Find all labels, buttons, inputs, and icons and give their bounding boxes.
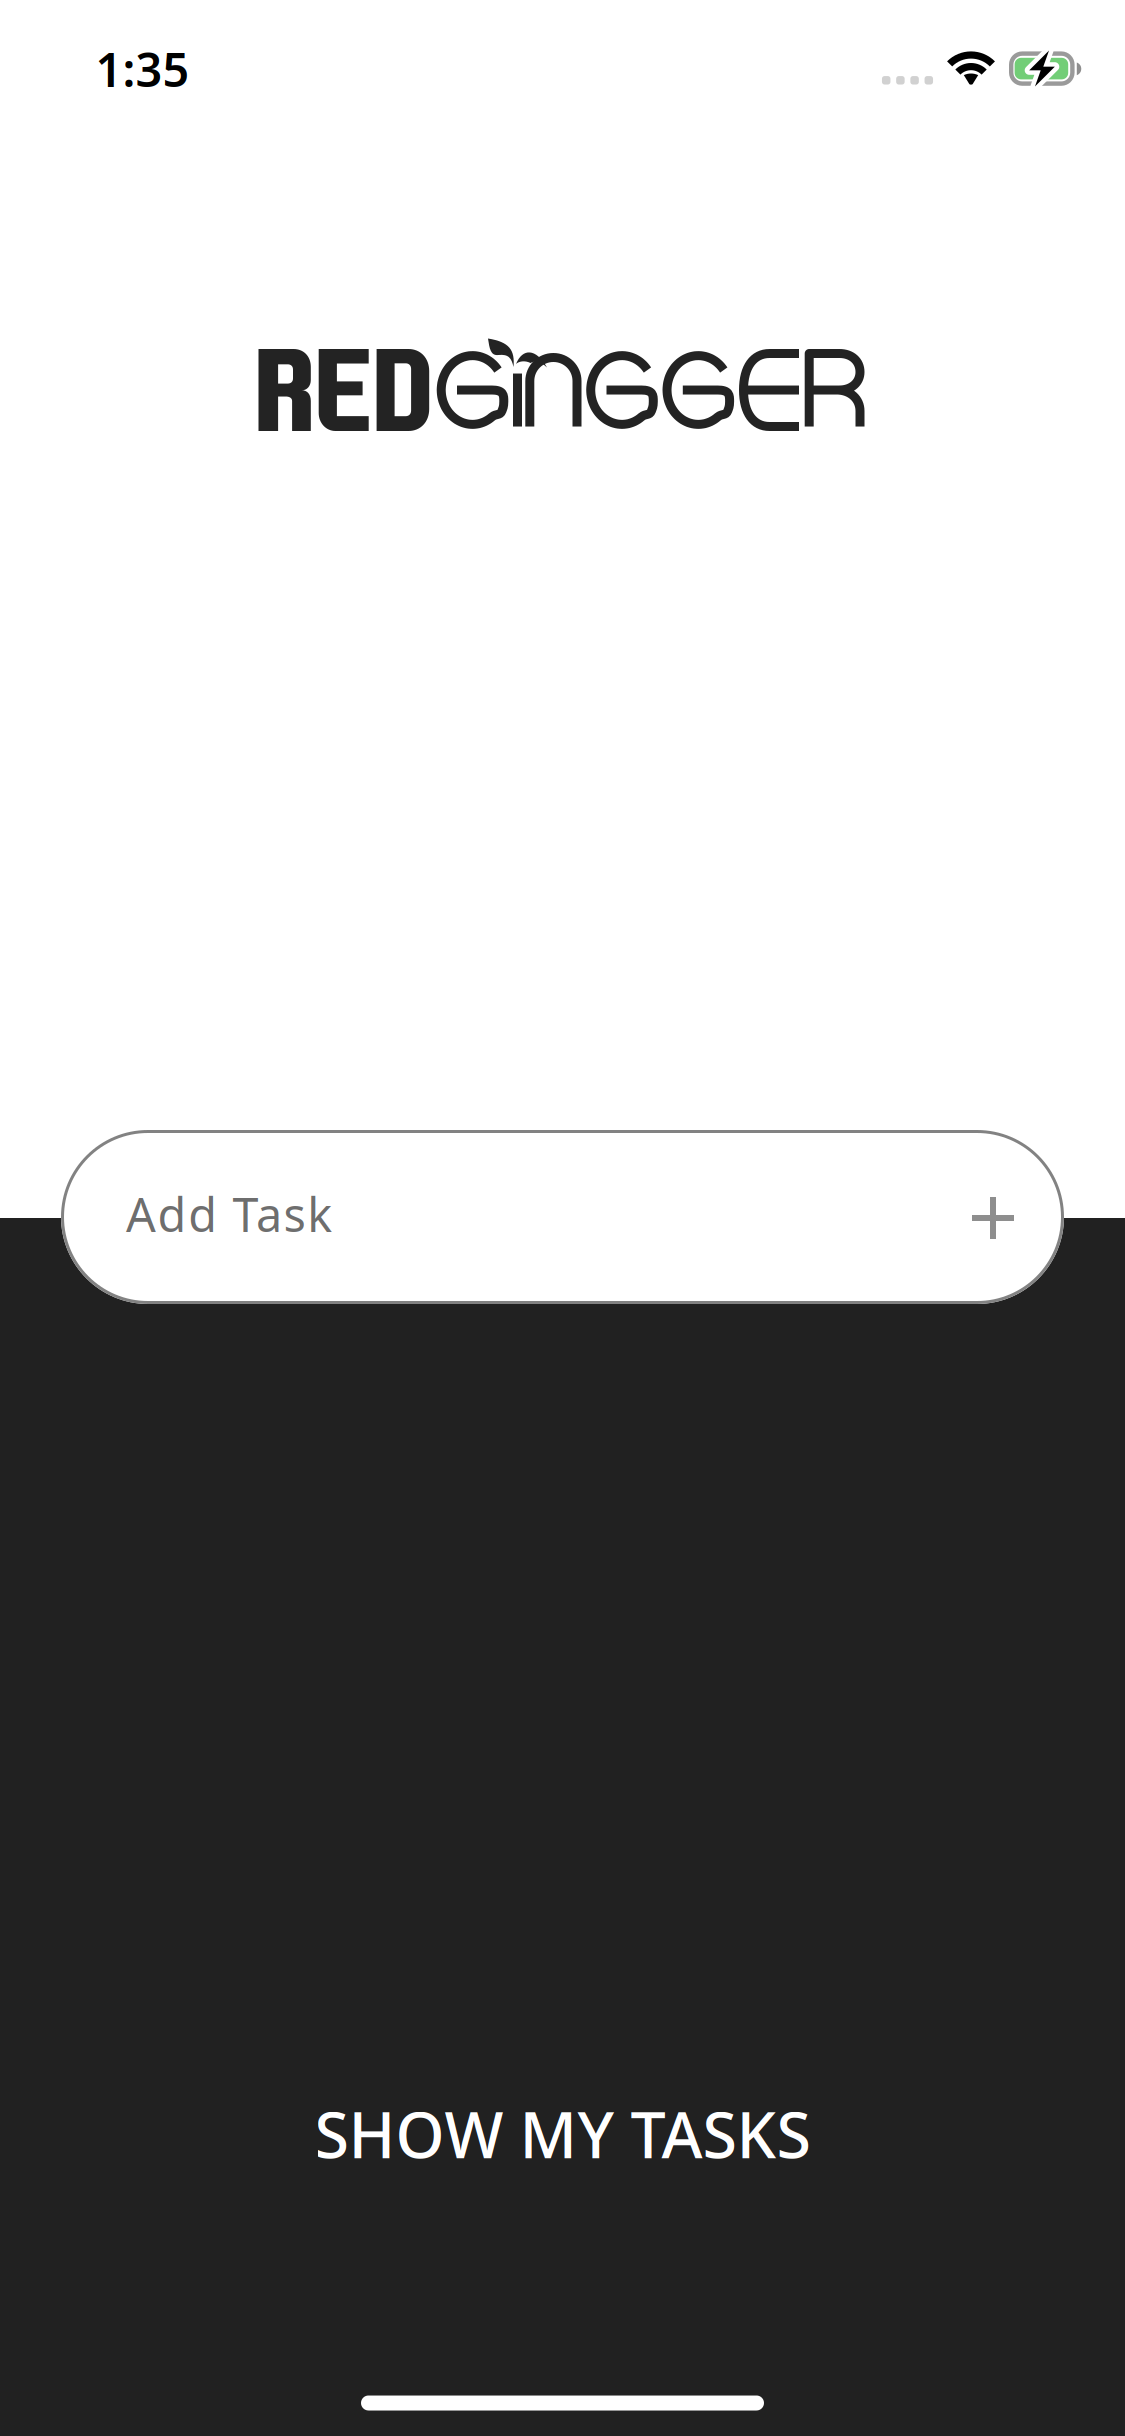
button[interactable]: Add Task xyxy=(61,1130,1064,1304)
button[interactable]: SHOW MY TASKS xyxy=(112,2069,1012,2199)
staticText: SHOW MY TASKS xyxy=(314,2092,810,2176)
staticText: Add Task xyxy=(126,1183,332,1245)
button[interactable]: Add task xyxy=(938,1131,1048,1305)
staticText: 1:35 xyxy=(95,38,189,100)
